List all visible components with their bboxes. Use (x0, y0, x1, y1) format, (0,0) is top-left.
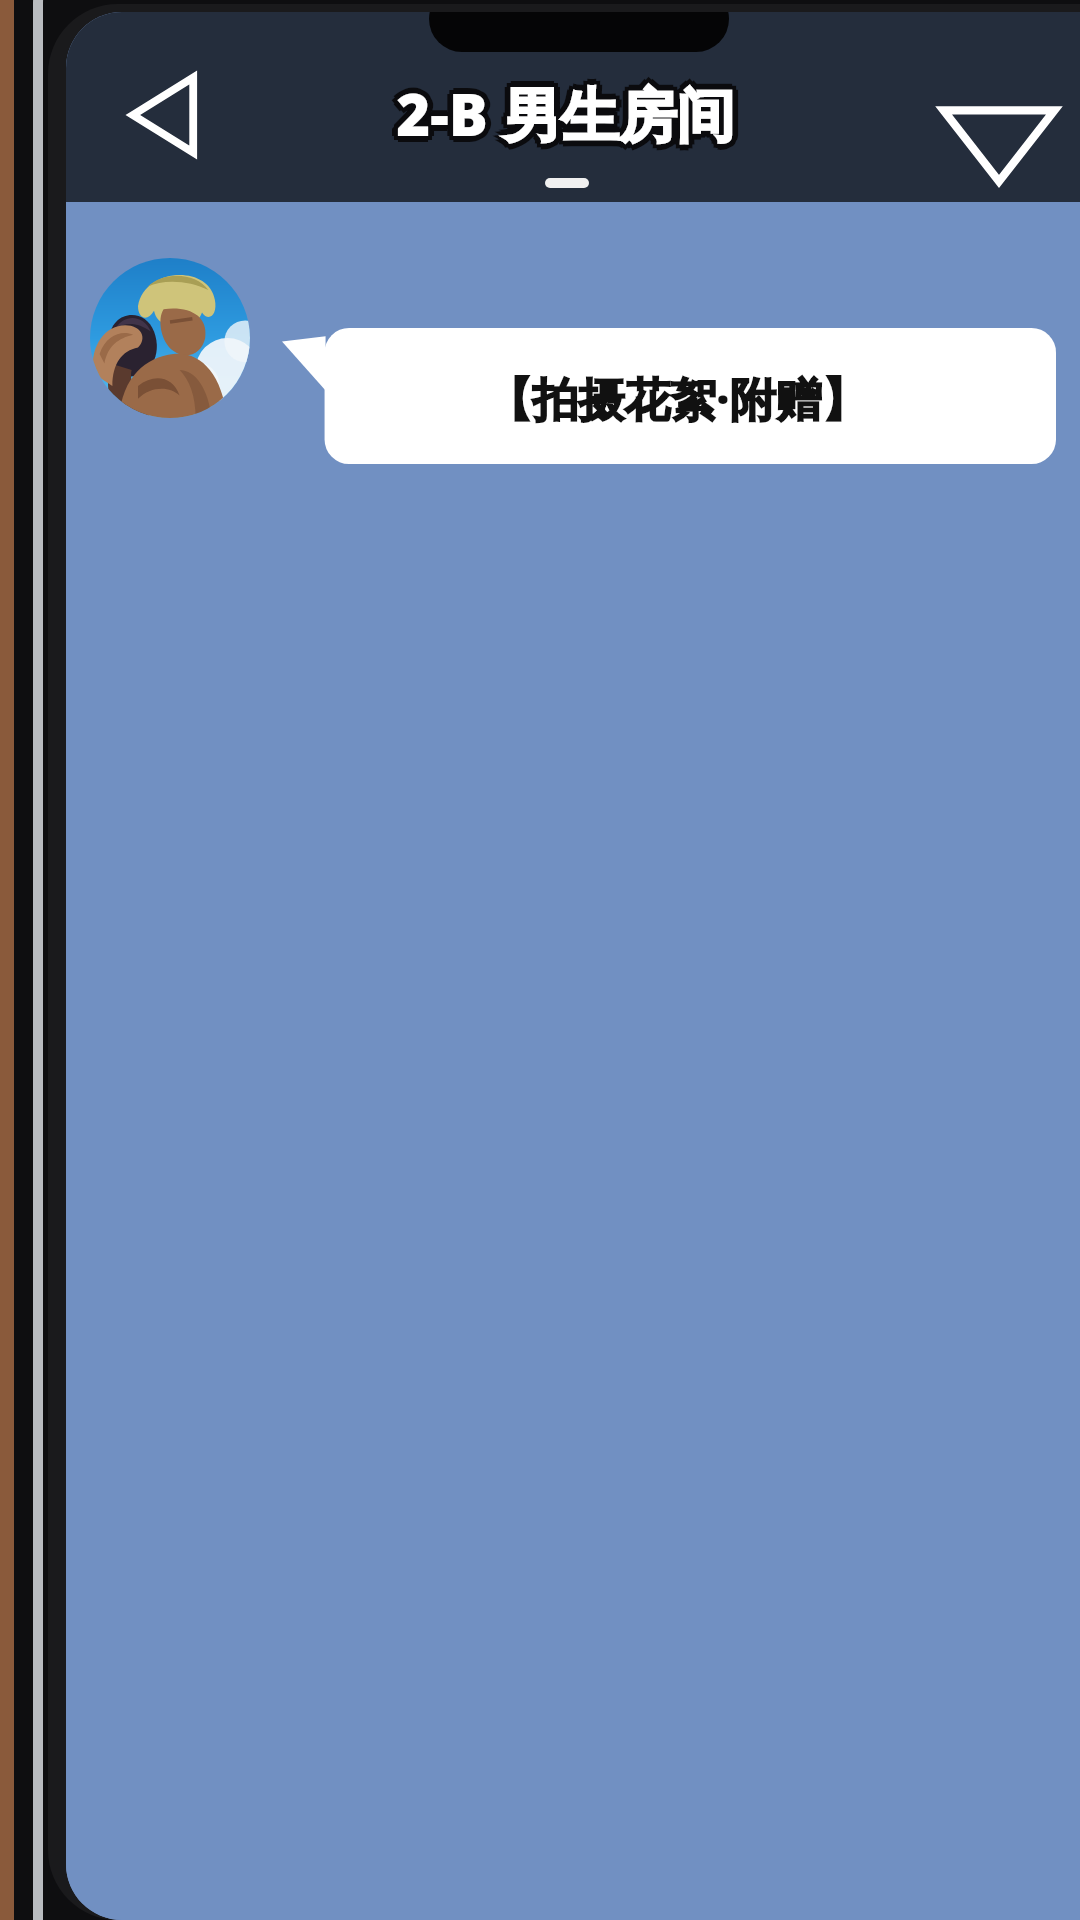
staticText: 2-B 男生房间 (392, 70, 731, 149)
button[interactable]: Back (110, 63, 214, 167)
staticText: 2-B 男生房间 (396, 74, 735, 153)
staticText: 2-B 男生房间 (402, 74, 741, 153)
button[interactable]: 【拍摄花絮·附赠】 (282, 328, 1056, 464)
staticText: 2-B 男生房间 (396, 68, 735, 147)
staticText: 2-B 男生房间 (392, 78, 731, 157)
staticText: 2-B 男生房间 (400, 70, 739, 149)
staticText: 2-B 男生房间 (396, 80, 735, 159)
staticText: 2-B 男生房间 (392, 74, 731, 153)
staticText: 【拍摄花絮·附赠】 (486, 367, 868, 430)
staticText: 2-B 男生房间 (396, 78, 735, 157)
staticText: 2-B 男生房间 (400, 74, 739, 153)
button[interactable]: Menu (936, 95, 1062, 191)
button[interactable]: Profile picture (90, 258, 250, 418)
staticText: 2-B 男生房间 (396, 70, 735, 149)
staticText: 2-B 男生房间 (390, 74, 729, 153)
staticText: 2-B 男生房间 (400, 78, 739, 157)
